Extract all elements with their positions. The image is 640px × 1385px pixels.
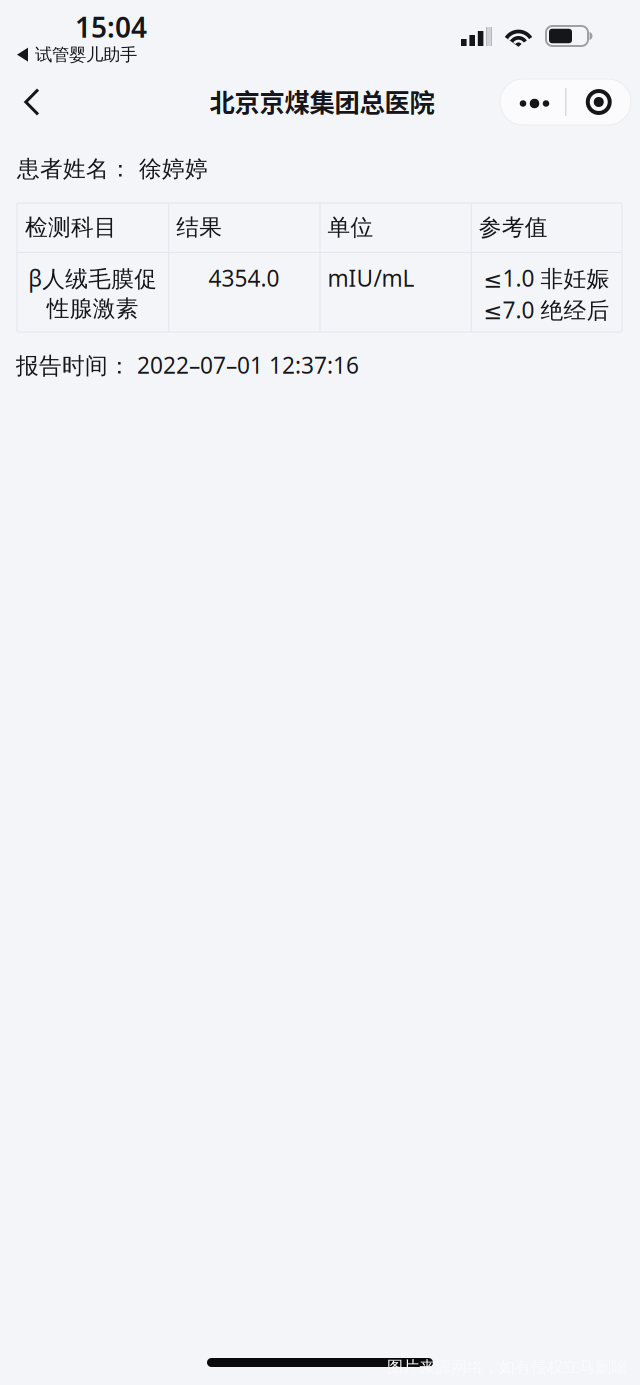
staticText: ≤1.0 非妊娠 (483, 263, 609, 293)
staticText: 试管婴儿助手 (35, 44, 137, 65)
button[interactable]: More options (500, 79, 565, 125)
staticText: 北京京煤集团总医院 (209, 83, 434, 119)
staticText: mIU/mL (327, 263, 414, 293)
staticText: 单位 (327, 214, 373, 241)
staticText: 结果 (176, 214, 222, 241)
staticText: 报告时间： 2022–07–01 12:37:16 (16, 350, 359, 380)
staticText: 患者姓名： 徐婷婷 (17, 155, 208, 183)
staticText: β人绒毛膜促 (28, 263, 157, 293)
staticText: 图片来源网络，如有侵权立马删除 (387, 1357, 627, 1377)
staticText: 15:04 (75, 8, 147, 46)
button[interactable]: Close mini program (566, 79, 631, 125)
staticText: 性腺激素 (47, 295, 139, 322)
button[interactable]: Back (4, 74, 60, 130)
staticText: 4354.0 (208, 263, 279, 293)
staticText: ≤7.0 绝经后 (483, 295, 609, 325)
staticText: 参考值 (479, 214, 548, 241)
staticText: 检测科目 (25, 214, 117, 241)
